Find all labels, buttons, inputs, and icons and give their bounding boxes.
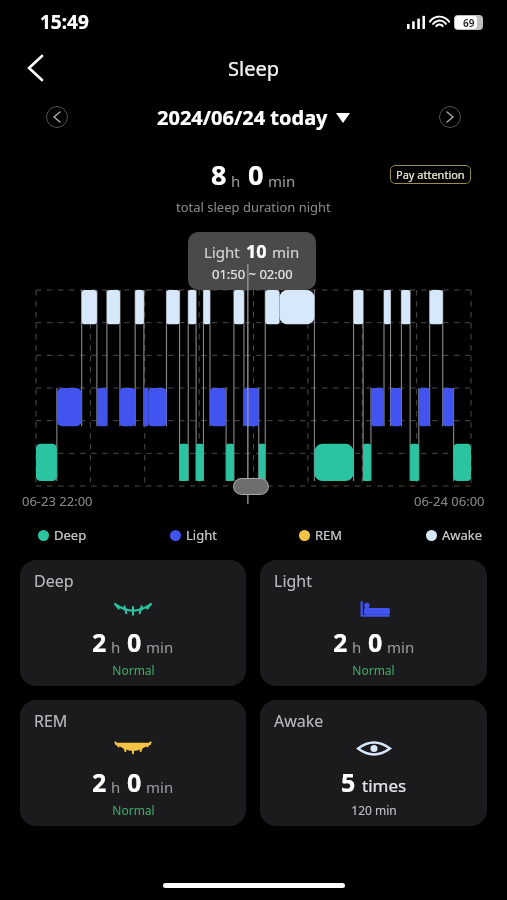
staticText: 2024/06/24 today (157, 104, 328, 131)
button[interactable]: Back (14, 47, 56, 89)
staticText: 0 (368, 625, 383, 659)
staticText: total sleep duration night (176, 198, 331, 216)
staticText: Deep (54, 526, 87, 544)
staticText: min (272, 242, 300, 262)
button[interactable]: Pay attention (390, 165, 471, 184)
staticText: min (387, 637, 415, 657)
staticText: 06-23 22:00 (22, 492, 93, 510)
staticText: 2 (333, 625, 348, 659)
staticText: 2 (92, 625, 107, 659)
button[interactable]: Scrub timeline (233, 478, 269, 495)
staticText: 8 (211, 156, 227, 193)
button[interactable]: Deep (20, 560, 246, 686)
staticText: Normal (352, 662, 395, 676)
staticText: Sleep (228, 55, 279, 82)
staticText: Awake (274, 710, 324, 732)
button[interactable]: REM (20, 700, 246, 826)
staticText: 69 (463, 16, 475, 30)
staticText: Normal (112, 802, 155, 816)
staticText: 0 (127, 765, 142, 799)
staticText: h (111, 777, 121, 797)
staticText: h (352, 637, 362, 657)
button[interactable]: Awake (426, 526, 483, 544)
staticText: Awake (442, 526, 483, 544)
staticText: h (231, 171, 241, 191)
staticText: 01:50 ~ 02:00 (212, 265, 293, 283)
staticText: min (146, 637, 174, 657)
staticText: min (268, 171, 296, 191)
staticText: 2 (92, 765, 107, 799)
button[interactable]: Previous day (46, 106, 68, 128)
staticText: Pay attention (396, 167, 465, 182)
staticText: 15:49 (40, 9, 89, 35)
button[interactable]: Awake (260, 700, 487, 826)
button[interactable]: Deep (38, 526, 87, 544)
staticText: 06-24 06:00 (414, 492, 485, 510)
button[interactable]: 2024/06/24 today (157, 104, 350, 131)
staticText: 0 (248, 156, 264, 193)
button[interactable]: Next day (439, 106, 461, 128)
staticText: Deep (34, 570, 74, 592)
staticText: h (111, 637, 121, 657)
staticText: min (146, 777, 174, 797)
staticText: Normal (112, 662, 155, 676)
staticText: 120 min (351, 802, 397, 816)
staticText: Light (186, 526, 217, 544)
staticText: Light (274, 570, 313, 592)
staticText: REM (315, 526, 343, 544)
staticText: Light (204, 242, 240, 262)
button[interactable]: Light (260, 560, 487, 686)
staticText: 0 (127, 625, 142, 659)
staticText: 10 (246, 239, 267, 264)
button[interactable]: Light (170, 526, 217, 544)
staticText: REM (34, 710, 68, 732)
staticText: 5 (341, 765, 356, 799)
button[interactable]: REM (299, 526, 343, 544)
staticText: times (362, 774, 407, 797)
